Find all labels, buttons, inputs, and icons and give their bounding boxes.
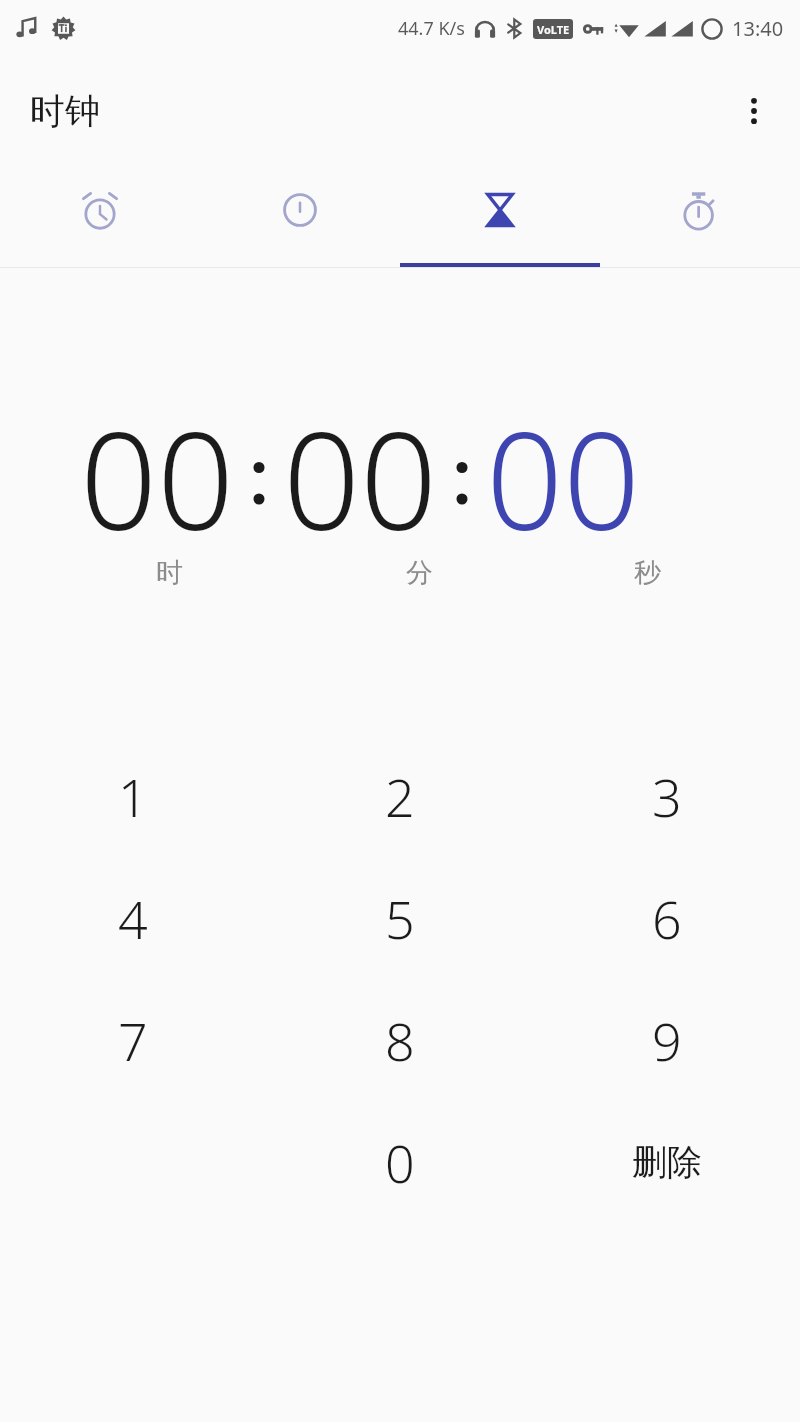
- staticText: VoLTE: [537, 22, 570, 37]
- staticText: 时: [156, 556, 183, 590]
- button[interactable]: 删除: [533, 1101, 800, 1223]
- button[interactable]: Timer: [400, 165, 600, 268]
- button[interactable]: 4: [0, 857, 266, 979]
- staticText: 删除: [632, 1140, 702, 1184]
- staticText: 4: [118, 883, 148, 954]
- staticText: 9: [652, 1005, 682, 1076]
- button[interactable]: 8: [266, 979, 533, 1101]
- staticText: 时钟: [30, 89, 100, 133]
- staticText: 分: [406, 556, 433, 590]
- button[interactable]: More options: [724, 81, 784, 141]
- staticText: 13:40: [732, 15, 784, 42]
- staticText: 5: [385, 883, 415, 954]
- staticText: 00: [80, 386, 235, 570]
- button[interactable]: World clock: [200, 165, 400, 268]
- staticText: 8: [385, 1005, 415, 1076]
- button[interactable]: 2: [266, 735, 533, 857]
- button[interactable]: 6: [533, 857, 800, 979]
- button[interactable]: Alarm: [0, 165, 200, 268]
- staticText: 秒: [634, 556, 661, 590]
- button[interactable]: 1: [0, 735, 266, 857]
- button[interactable]: Stopwatch: [600, 165, 800, 268]
- staticText: 00: [283, 386, 438, 570]
- button[interactable]: 9: [533, 979, 800, 1101]
- staticText: 1: [118, 761, 148, 832]
- staticText: 3: [652, 761, 682, 832]
- staticText: 0: [385, 1127, 415, 1198]
- button[interactable]: 0: [266, 1101, 533, 1223]
- button[interactable]: 5: [266, 857, 533, 979]
- staticText: 2: [385, 761, 415, 832]
- staticText: 00: [486, 386, 641, 570]
- staticText: 44.7 K/s: [398, 16, 465, 41]
- staticText: 7: [118, 1005, 148, 1076]
- staticText: 6: [652, 883, 682, 954]
- button[interactable]: 3: [533, 735, 800, 857]
- button[interactable]: 7: [0, 979, 266, 1101]
